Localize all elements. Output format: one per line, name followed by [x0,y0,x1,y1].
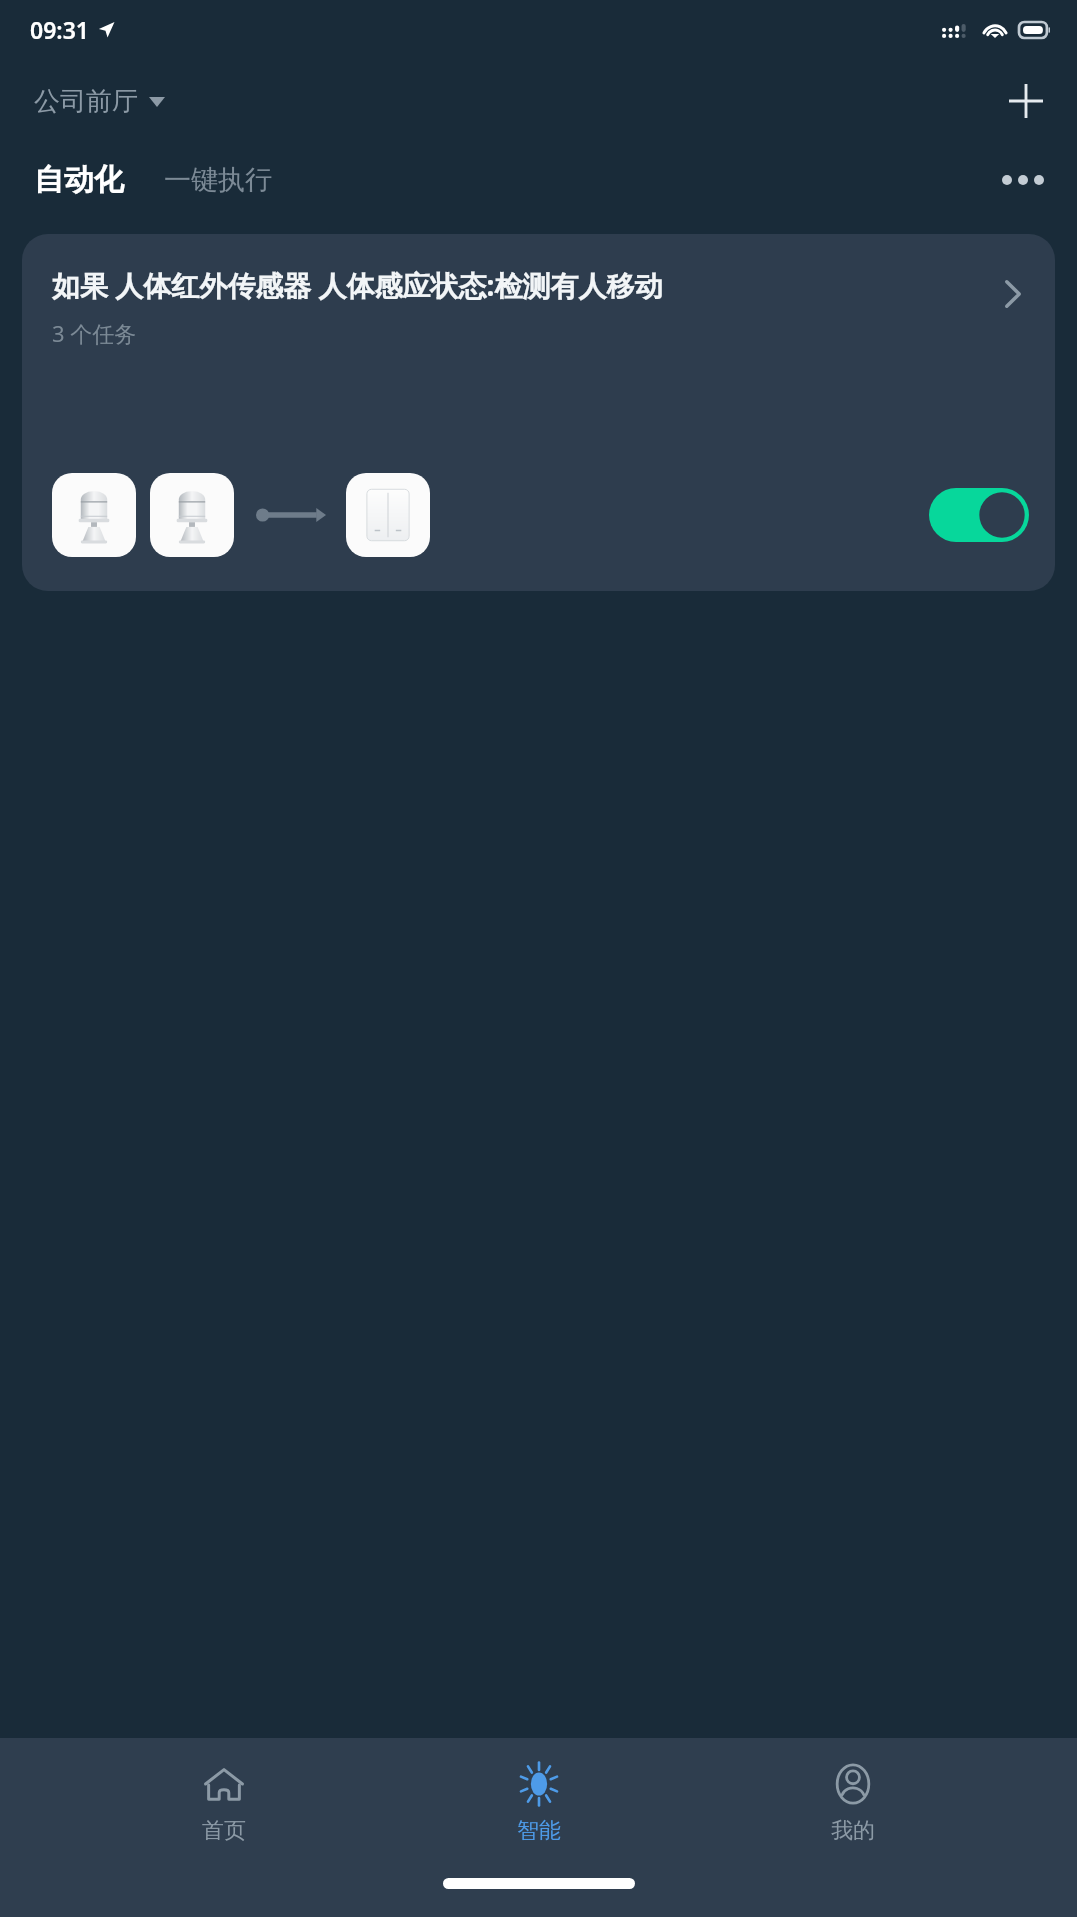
button[interactable]: 自动化 [30,155,128,205]
button[interactable]: Enable automation [929,488,1029,542]
staticText: 智能 [517,1817,561,1845]
staticText: 我的 [831,1817,875,1845]
staticText: 3 个任务 [52,318,137,348]
button[interactable]: More options [995,152,1051,208]
button[interactable]: Device [52,473,136,557]
button[interactable]: Device [150,473,234,557]
staticText: 09:31 [30,14,89,45]
staticText: 首页 [202,1817,246,1845]
button[interactable]: Add [999,74,1053,128]
button[interactable]: 智能 [449,1754,629,1851]
staticText: 公司前厅 [34,85,138,118]
staticText: 一键执行 [164,163,272,197]
button[interactable]: 首页 [134,1754,314,1851]
button[interactable]: Open automation details [993,274,1033,314]
staticText: 如果 人体红外传感器 人体感应状态:检测有人移动 [52,266,663,304]
staticText: 自动化 [34,161,124,199]
button[interactable]: 一键执行 [160,157,276,203]
button[interactable]: 我的 [763,1754,943,1851]
button[interactable]: Device [346,473,430,557]
button[interactable]: 如果 人体红外传感器 人体感应状态:检测有人移动 [22,234,1055,591]
button[interactable]: 公司前厅 [30,79,169,124]
